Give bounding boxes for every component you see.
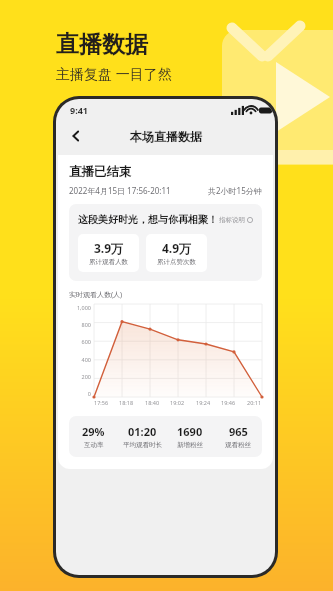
staticText: 累计点赞次数 [157,258,196,266]
button[interactable]: Back [62,122,90,150]
button[interactable]: 指标说明 [219,216,253,224]
button[interactable]: 965 [214,424,262,449]
staticText: 29% [82,424,105,439]
button[interactable]: 3.9万 [78,234,139,272]
staticText: 直播数据 [56,30,148,59]
staticText: 19:24 [196,399,211,406]
staticText: 18:40 [145,399,160,406]
staticText: 200 [81,373,91,380]
staticText: 20:11 [247,399,262,406]
staticText: 直播已结束 [69,164,132,180]
button[interactable]: 01:20 [118,424,166,449]
staticText: 4.9万 [162,240,192,256]
staticText: 2022年4月15日 17:56-20:11 [69,185,171,196]
staticText: 平均观看时长 [123,441,162,449]
button[interactable]: 4.9万 [146,234,207,272]
staticText: 指标说明 [219,216,245,224]
staticText: 800 [81,321,91,328]
button[interactable]: 29% [69,424,118,449]
staticText: 01:20 [128,424,157,439]
staticText: 这段美好时光，想与你再相聚！ [78,213,218,226]
staticText: 3.9万 [94,240,124,256]
staticText: 600 [81,338,91,345]
staticText: 本场直播数据 [130,129,202,144]
staticText: 累计观看人数 [89,258,128,266]
staticText: 观看粉丝 [225,441,251,449]
button[interactable]: 1690 [166,424,214,449]
staticText: 1,000 [76,304,91,311]
staticText: 新增粉丝 [177,441,203,449]
staticText: 共2小时15分钟 [208,185,262,196]
staticText: 17:56 [94,399,109,406]
staticText: 18:18 [119,399,134,406]
staticText: 965 [229,424,248,439]
staticText: 主播复盘 一目了然 [56,64,172,83]
staticText: 19:46 [221,399,236,406]
staticText: 0 [87,390,91,397]
staticText: 1690 [177,424,203,439]
staticText: 400 [81,356,91,363]
staticText: 19:02 [170,399,185,406]
staticText: 9:41 [70,104,88,116]
staticText: 实时观看人数(人) [69,290,123,300]
staticText: 互动率 [84,441,104,449]
